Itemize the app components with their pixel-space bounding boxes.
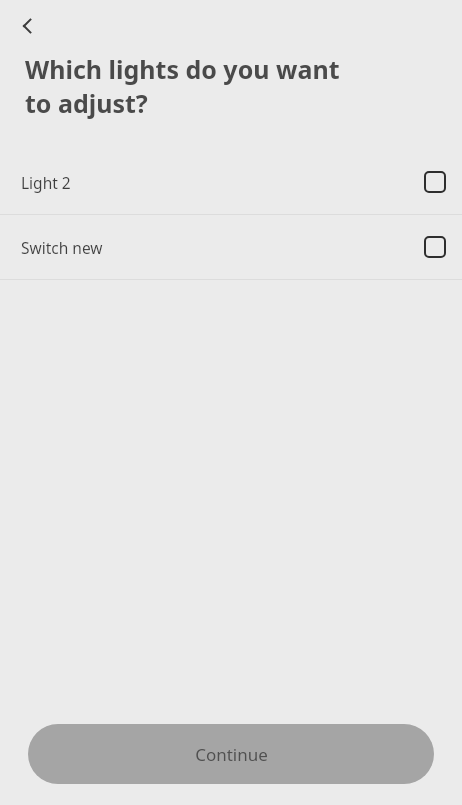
- button[interactable]: Continue: [28, 724, 434, 784]
- button[interactable]: Back: [8, 6, 48, 46]
- button[interactable]: Light 2: [0, 150, 462, 214]
- button[interactable]: Switch new: [0, 215, 462, 279]
- staticText: Which lights do you want to adjust?: [25, 52, 340, 120]
- staticText: Light 2: [21, 172, 71, 193]
- staticText: Switch new: [21, 237, 103, 258]
- staticText: Continue: [195, 743, 268, 766]
